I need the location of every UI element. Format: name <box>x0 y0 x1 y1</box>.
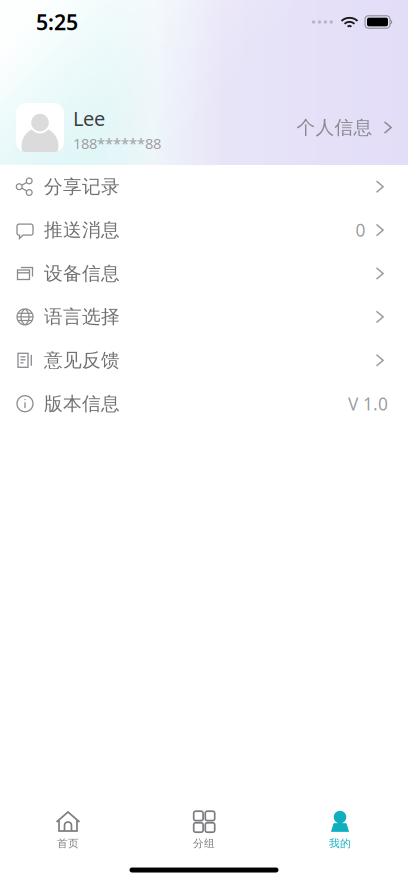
staticText: 个人信息 <box>297 116 373 139</box>
staticText: 分享记录 <box>44 175 120 198</box>
staticText: 推送消息 <box>44 219 120 241</box>
button[interactable]: 我的 <box>272 804 408 856</box>
button[interactable]: 推送消息 <box>0 208 408 252</box>
staticText: Lee <box>73 105 105 132</box>
staticText: 我的 <box>329 837 351 850</box>
button[interactable]: 版本信息 <box>0 382 408 425</box>
staticText: 意见反馈 <box>44 349 120 372</box>
button[interactable]: 分组 <box>136 804 272 856</box>
button[interactable]: 语言选择 <box>0 295 408 339</box>
staticText: 语言选择 <box>44 305 120 328</box>
button[interactable]: 个人信息 <box>297 108 392 147</box>
staticText: 版本信息 <box>44 392 120 415</box>
staticText: 分组 <box>193 837 215 850</box>
staticText: 5:25 <box>36 8 78 36</box>
staticText: 设备信息 <box>44 262 120 285</box>
staticText: V 1.0 <box>348 392 388 415</box>
button[interactable]: 意见反馈 <box>0 339 408 382</box>
button[interactable]: 首页 <box>0 804 136 856</box>
button[interactable]: 分享记录 <box>0 165 408 208</box>
staticText: 188******88 <box>73 134 161 153</box>
staticText: 首页 <box>57 837 79 850</box>
staticText: 0 <box>356 219 366 242</box>
button[interactable]: 设备信息 <box>0 252 408 295</box>
